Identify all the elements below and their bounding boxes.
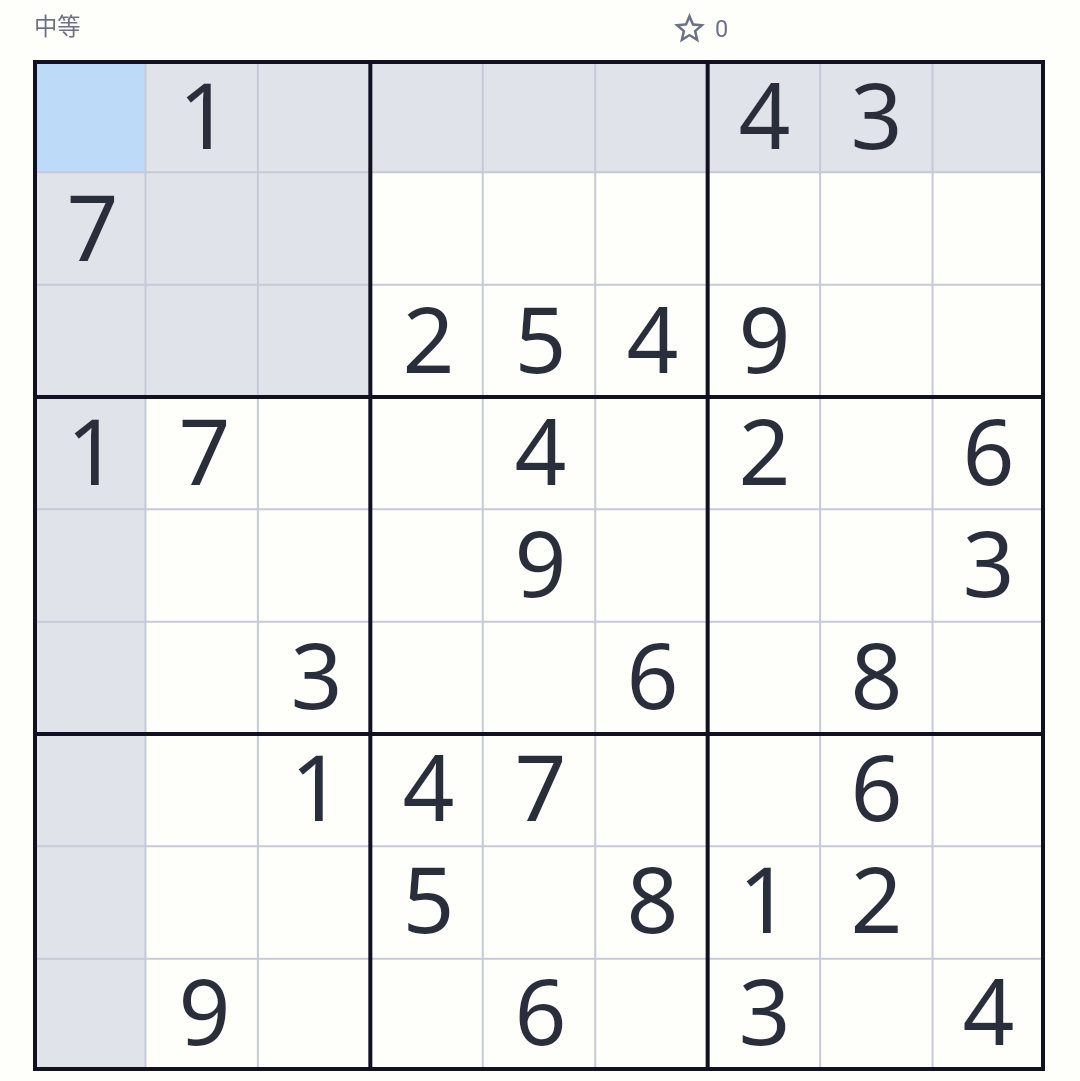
button[interactable]: Empty cell row 2 column 5 xyxy=(481,172,593,284)
button[interactable]: 3 row 1 column 8 xyxy=(817,60,929,172)
staticText: 0 xyxy=(715,15,729,43)
staticText: 2 xyxy=(402,276,455,388)
button[interactable]: Empty cell row 5 column 8 xyxy=(817,508,929,620)
button[interactable]: 9 row 9 column 2 xyxy=(145,956,257,1068)
button[interactable]: 5 row 3 column 5 xyxy=(481,284,593,396)
button[interactable]: 4 row 7 column 4 xyxy=(369,732,481,844)
button[interactable]: 1 row 1 column 2 xyxy=(145,60,257,172)
button[interactable]: Empty cell row 5 column 2 xyxy=(145,508,257,620)
button[interactable]: Empty cell row 1 column 6 xyxy=(593,60,705,172)
button[interactable]: Empty cell row 7 column 6 xyxy=(593,732,705,844)
button[interactable]: 8 row 6 column 8 xyxy=(817,620,929,732)
button[interactable]: Empty cell row 9 column 6 xyxy=(593,956,705,1068)
button[interactable]: 1 row 7 column 3 xyxy=(257,732,369,844)
button[interactable]: 4 row 1 column 7 xyxy=(705,60,817,172)
button[interactable]: Empty cell row 2 column 6 xyxy=(593,172,705,284)
button[interactable]: Empty cell row 5 column 6 xyxy=(593,508,705,620)
button[interactable]: Empty cell row 2 column 9 xyxy=(929,172,1041,284)
button[interactable]: 4 row 4 column 5 xyxy=(481,396,593,508)
button[interactable]: Empty cell row 5 column 4 xyxy=(369,508,481,620)
button[interactable]: 9 row 3 column 7 xyxy=(705,284,817,396)
staticText: 9 xyxy=(514,500,567,612)
button[interactable]: 6 row 7 column 8 xyxy=(817,732,929,844)
staticText: 4 xyxy=(738,52,791,164)
button[interactable]: Empty cell row 2 column 2 xyxy=(145,172,257,284)
button[interactable]: 9 row 5 column 5 xyxy=(481,508,593,620)
staticText: 3 xyxy=(962,500,1015,612)
button[interactable]: Empty cell row 6 column 7 xyxy=(705,620,817,732)
button[interactable]: Empty cell row 4 column 8 xyxy=(817,396,929,508)
button[interactable]: Empty cell row 3 column 8 xyxy=(817,284,929,396)
staticText: 4 xyxy=(514,388,567,500)
button[interactable]: Empty cell row 6 column 1 xyxy=(33,620,145,732)
button[interactable]: Empty cell row 8 column 2 xyxy=(145,844,257,956)
button[interactable]: 2 row 3 column 4 xyxy=(369,284,481,396)
button[interactable]: Empty cell row 3 column 3 xyxy=(257,284,369,396)
button[interactable]: 3 row 9 column 7 xyxy=(705,956,817,1068)
button[interactable]: Empty cell row 1 column 3 xyxy=(257,60,369,172)
button[interactable]: 6 row 6 column 6 xyxy=(593,620,705,732)
button[interactable]: Empty cell row 2 column 4 xyxy=(369,172,481,284)
staticText: 7 xyxy=(66,164,119,276)
button[interactable]: Empty cell row 6 column 9 xyxy=(929,620,1041,732)
button[interactable]: 7 row 7 column 5 xyxy=(481,732,593,844)
button[interactable]: Empty cell row 7 column 9 xyxy=(929,732,1041,844)
button[interactable]: Empty cell row 8 column 3 xyxy=(257,844,369,956)
staticText: 8 xyxy=(850,612,903,724)
button[interactable]: Empty cell row 7 column 7 xyxy=(705,732,817,844)
button[interactable]: Empty cell row 2 column 8 xyxy=(817,172,929,284)
button[interactable]: 7 row 2 column 1 xyxy=(33,172,145,284)
button[interactable]: 中等 xyxy=(34,8,81,42)
button[interactable]: Empty cell row 4 column 3 xyxy=(257,396,369,508)
button[interactable]: Empty cell row 1 column 9 xyxy=(929,60,1041,172)
button[interactable]: 1 row 8 column 7 xyxy=(705,844,817,956)
button[interactable]: Empty cell row 8 column 9 xyxy=(929,844,1041,956)
staticText: 7 xyxy=(514,724,567,836)
button[interactable]: Empty cell row 2 column 3 xyxy=(257,172,369,284)
button[interactable]: Empty cell row 7 column 1 xyxy=(33,732,145,844)
button[interactable]: Empty cell row 4 column 6 xyxy=(593,396,705,508)
button[interactable]: Empty cell row 3 column 1 xyxy=(33,284,145,396)
button[interactable]: Empty cell row 9 column 1 xyxy=(33,956,145,1068)
button[interactable]: 5 row 8 column 4 xyxy=(369,844,481,956)
button[interactable]: Empty cell row 3 column 9 xyxy=(929,284,1041,396)
button[interactable]: 3 row 5 column 9 xyxy=(929,508,1041,620)
staticText: 4 xyxy=(626,276,679,388)
button[interactable]: Empty cell row 2 column 7 xyxy=(705,172,817,284)
button[interactable]: Empty cell row 5 column 1 xyxy=(33,508,145,620)
staticText: 6 xyxy=(514,948,567,1060)
button[interactable]: Empty cell row 9 column 8 xyxy=(817,956,929,1068)
button[interactable]: Favourite xyxy=(671,10,729,47)
staticText: 1 xyxy=(66,388,119,500)
button[interactable]: Empty cell row 5 column 7 xyxy=(705,508,817,620)
button[interactable]: Empty cell row 7 column 2 xyxy=(145,732,257,844)
button[interactable]: 4 row 3 column 6 xyxy=(593,284,705,396)
button[interactable]: Empty cell row 9 column 3 xyxy=(257,956,369,1068)
button[interactable]: 3 row 6 column 3 xyxy=(257,620,369,732)
staticText: 1 xyxy=(738,836,791,948)
button[interactable]: Empty cell row 3 column 2 xyxy=(145,284,257,396)
button[interactable]: Empty cell row 6 column 2 xyxy=(145,620,257,732)
button[interactable]: Empty cell row 4 column 4 xyxy=(369,396,481,508)
button[interactable]: 7 row 4 column 2 xyxy=(145,396,257,508)
button[interactable]: 6 row 4 column 9 xyxy=(929,396,1041,508)
button[interactable]: 6 row 9 column 5 xyxy=(481,956,593,1068)
button[interactable]: 4 row 9 column 9 xyxy=(929,956,1041,1068)
button[interactable]: 1 row 4 column 1 xyxy=(33,396,145,508)
staticText: 中等 xyxy=(34,8,81,42)
button[interactable]: Empty cell row 8 column 5 xyxy=(481,844,593,956)
staticText: 1 xyxy=(178,52,231,164)
button[interactable]: Empty cell row 1 column 4 xyxy=(369,60,481,172)
button[interactable]: 8 row 8 column 6 xyxy=(593,844,705,956)
staticText: 7 xyxy=(178,388,231,500)
button[interactable]: Empty cell row 6 column 4 xyxy=(369,620,481,732)
button[interactable]: 2 row 8 column 8 xyxy=(817,844,929,956)
button[interactable]: Empty cell row 1 column 1 xyxy=(33,60,145,172)
button[interactable]: Empty cell row 8 column 1 xyxy=(33,844,145,956)
button[interactable]: Empty cell row 5 column 3 xyxy=(257,508,369,620)
button[interactable]: Empty cell row 9 column 4 xyxy=(369,956,481,1068)
button[interactable]: 2 row 4 column 7 xyxy=(705,396,817,508)
button[interactable]: Empty cell row 1 column 5 xyxy=(481,60,593,172)
staticText: 3 xyxy=(738,948,791,1060)
button[interactable]: Empty cell row 6 column 5 xyxy=(481,620,593,732)
